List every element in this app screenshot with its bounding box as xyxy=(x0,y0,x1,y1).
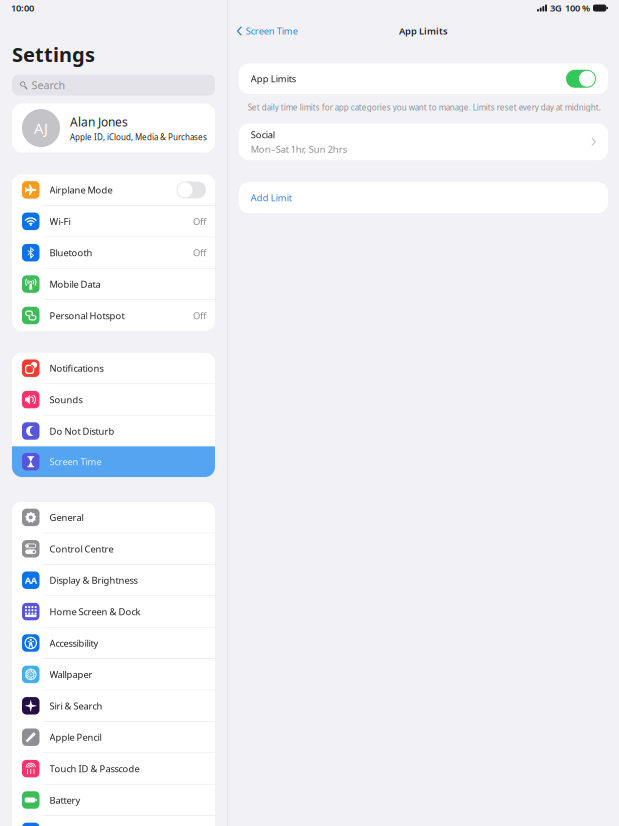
button[interactable]: Social xyxy=(239,124,608,160)
staticText: Personal Hotspot xyxy=(49,309,124,322)
staticText: Mon–Sat 1hr, Sun 2hrs xyxy=(251,143,347,155)
staticText: Home Screen & Dock xyxy=(49,605,140,618)
button[interactable]: Wallpaper xyxy=(12,659,215,690)
staticText: App Limits xyxy=(251,73,296,85)
staticText: Airplane Mode xyxy=(49,184,112,196)
staticText: Bluetooth xyxy=(49,246,92,259)
staticText: Mobile Data xyxy=(49,278,100,290)
staticText: Social xyxy=(251,128,275,141)
button[interactable]: Control Centre xyxy=(12,533,215,564)
staticText: 10:00 xyxy=(11,2,34,14)
staticText: Wallpaper xyxy=(49,668,92,681)
staticText: Sounds xyxy=(49,393,82,406)
staticText: AA xyxy=(25,574,37,586)
staticText: 100 % xyxy=(565,2,590,14)
staticText: Accessibility xyxy=(49,637,98,649)
staticText: App Limits xyxy=(399,25,448,37)
button[interactable]: App Limits toggle xyxy=(566,70,596,88)
button[interactable]: Screen Time xyxy=(228,20,298,42)
staticText: Notifications xyxy=(49,362,103,374)
button[interactable]: Privacy xyxy=(12,816,215,826)
button[interactable]: Home Screen & Dock xyxy=(12,596,215,627)
button[interactable]: Accessibility xyxy=(12,628,215,658)
staticText: General xyxy=(49,511,83,524)
button[interactable]: Battery xyxy=(12,785,215,815)
staticText: Control Centre xyxy=(49,543,113,555)
staticText: 3G xyxy=(550,2,562,14)
button[interactable]: Do Not Disturb xyxy=(12,416,215,446)
button[interactable]: Personal Hotspot xyxy=(12,300,215,331)
button[interactable]: Search xyxy=(12,75,215,96)
button[interactable]: Airplane Mode xyxy=(12,175,215,205)
button[interactable]: Apple Pencil xyxy=(12,722,215,753)
button[interactable]: General xyxy=(12,502,215,533)
staticText: Off xyxy=(193,215,206,227)
button[interactable]: Mobile Data xyxy=(12,269,215,299)
staticText: Add Limit xyxy=(251,191,292,204)
staticText: Do Not Disturb xyxy=(49,425,114,437)
button[interactable]: Notifications xyxy=(12,353,215,384)
staticText: Battery xyxy=(49,794,80,806)
button[interactable]: Screen Time xyxy=(12,446,215,477)
staticText: Off xyxy=(193,309,206,322)
button[interactable]: Siri & Search xyxy=(12,690,215,721)
staticText: Touch ID & Passcode xyxy=(49,762,139,775)
button[interactable]: Bluetooth xyxy=(12,237,215,268)
staticText: Off xyxy=(193,246,206,259)
staticText: AJ xyxy=(34,118,48,138)
staticText: Alan Jones xyxy=(70,114,128,130)
button[interactable]: Touch ID & Passcode xyxy=(12,753,215,784)
staticText: Set daily time limits for app categories… xyxy=(248,102,601,113)
button[interactable]: Sounds xyxy=(12,384,215,415)
staticText: Wi-Fi xyxy=(49,215,70,227)
staticText: Settings xyxy=(12,41,95,68)
button[interactable]: AA xyxy=(12,565,215,596)
staticText: Screen Time xyxy=(246,25,298,37)
staticText: Siri & Search xyxy=(49,700,102,712)
button[interactable]: Add Limit xyxy=(239,182,608,213)
staticText: Display & Brightness xyxy=(49,574,137,586)
staticText: Apple ID, iCloud, Media & Purchases xyxy=(70,132,207,142)
staticText: Screen Time xyxy=(49,455,101,468)
button[interactable]: AJ xyxy=(12,104,215,153)
button[interactable]: Wi-Fi xyxy=(12,206,215,237)
staticText: Apple Pencil xyxy=(49,731,101,743)
staticText: Search xyxy=(31,78,65,92)
